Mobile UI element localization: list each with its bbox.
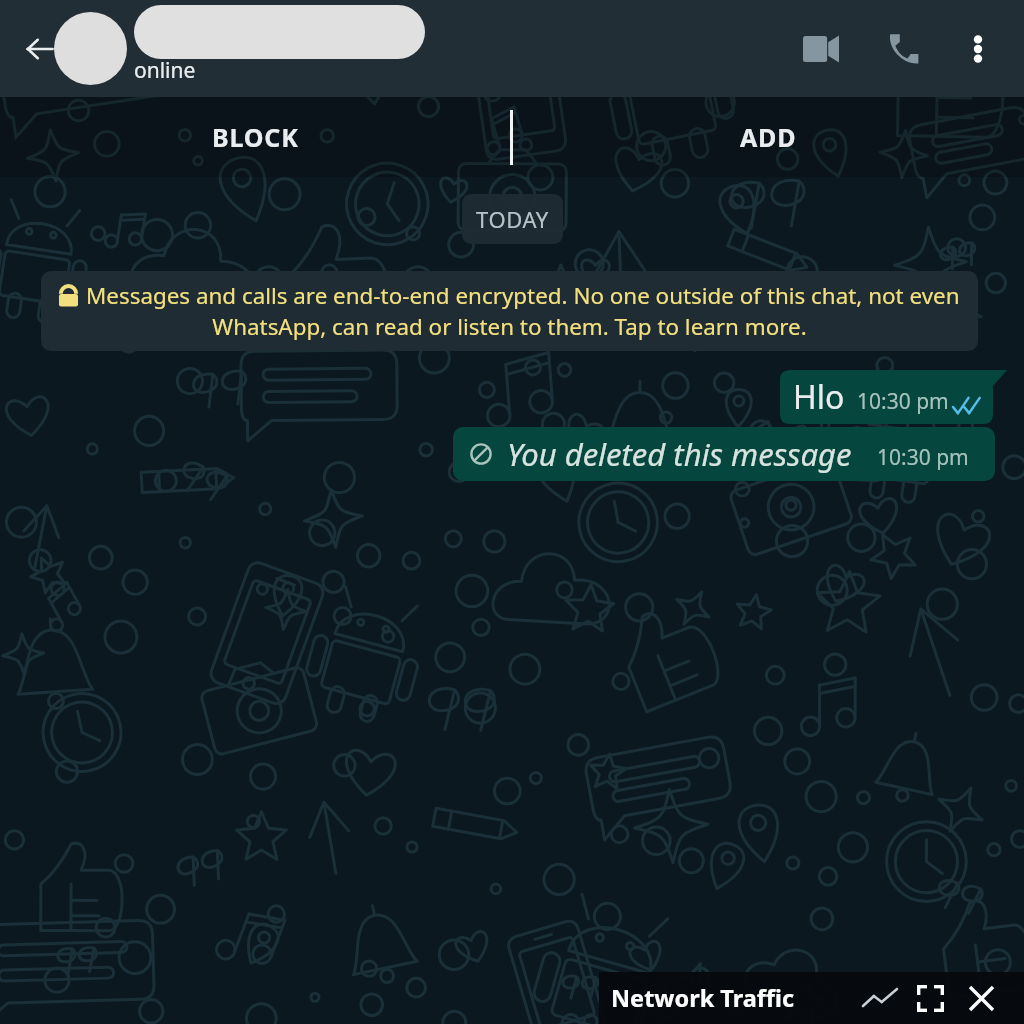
button[interactable]: More options (944, 15, 1012, 83)
button[interactable]: Hlo (780, 370, 1007, 424)
button[interactable]: You deleted this message (453, 427, 995, 481)
staticText: 10:30 pm (877, 443, 969, 472)
button[interactable]: TODAY (462, 194, 563, 244)
staticText: online (134, 56, 196, 85)
staticText: You deleted this message (507, 433, 852, 475)
staticText: BLOCK (212, 120, 299, 154)
button[interactable]: Graph (854, 973, 905, 1024)
button[interactable]: ADD (513, 97, 1024, 177)
staticText: WhatsApp, can read or listen to them. Ta… (212, 311, 807, 342)
button[interactable]: Contact profile photo (54, 12, 127, 85)
button[interactable]: Expand (905, 973, 956, 1024)
staticText: Network Traffic (611, 982, 795, 1014)
button[interactable]: Video call (780, 8, 862, 90)
staticText: 10:30 pm (857, 387, 949, 416)
button[interactable]: Close (956, 973, 1007, 1024)
staticText: ADD (740, 120, 797, 154)
button[interactable]: Messages and calls are end-to-end encryp… (41, 271, 978, 351)
button[interactable]: Contact info, online (134, 5, 425, 88)
button[interactable]: Voice call (862, 8, 944, 90)
button[interactable]: Back (13, 22, 67, 76)
staticText: TODAY (476, 204, 549, 234)
staticText: Hlo (793, 375, 845, 419)
button[interactable]: BLOCK (0, 97, 510, 177)
staticText: Messages and calls are end-to-end encryp… (86, 280, 960, 311)
